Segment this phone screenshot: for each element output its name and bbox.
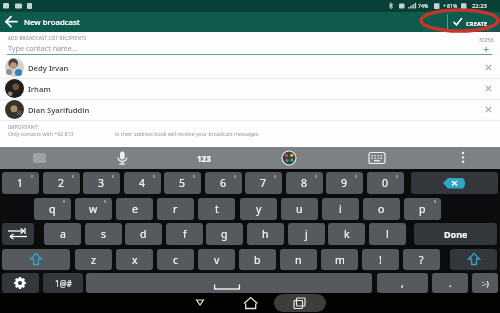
staticText: q xyxy=(49,202,56,216)
button[interactable]: 7 xyxy=(245,172,282,194)
button[interactable] xyxy=(450,249,497,270)
button[interactable] xyxy=(2,12,30,31)
button[interactable]: e xyxy=(116,198,153,220)
button[interactable]: 9 xyxy=(326,172,363,194)
staticText: 7 xyxy=(260,176,267,190)
button[interactable]: 6 xyxy=(205,172,242,194)
staticText: p xyxy=(419,202,426,216)
staticText: n xyxy=(295,253,302,267)
button[interactable]: 1 xyxy=(2,172,39,194)
button[interactable]: a xyxy=(44,223,81,245)
staticText: Dian Syarifuddin xyxy=(28,105,90,115)
button[interactable]: w xyxy=(75,198,112,220)
button[interactable]: Dian Syarifuddin xyxy=(0,99,500,120)
button[interactable]: y xyxy=(240,198,277,220)
button[interactable]: 0 xyxy=(367,172,404,194)
button[interactable]: Irham xyxy=(0,78,500,99)
button[interactable]: s xyxy=(85,223,122,245)
staticText: + xyxy=(483,41,490,56)
staticText: , xyxy=(401,276,404,290)
button[interactable]: g xyxy=(206,223,243,245)
button[interactable]: 5 xyxy=(164,172,201,194)
button[interactable]: d xyxy=(125,223,162,245)
button[interactable]: 1@# xyxy=(43,273,83,293)
button[interactable]: f xyxy=(166,223,203,245)
button[interactable]: ! xyxy=(362,249,399,270)
button[interactable]: Done xyxy=(414,223,497,245)
button[interactable]: CREATE xyxy=(449,12,500,31)
staticText: h xyxy=(262,227,269,241)
staticText: f xyxy=(183,227,187,241)
staticText: 81% xyxy=(447,2,458,9)
staticText: l xyxy=(386,227,389,241)
button[interactable]: b xyxy=(239,249,276,270)
staticText: y xyxy=(256,202,262,216)
staticText: CREATE xyxy=(466,20,488,28)
staticText: c xyxy=(173,253,179,267)
button[interactable]: c xyxy=(157,249,194,270)
staticText: 8 xyxy=(301,176,308,190)
staticText: e xyxy=(132,202,138,216)
button[interactable] xyxy=(190,295,210,311)
staticText: b xyxy=(254,253,261,267)
staticText: ADD BROADCAST LIST RECIPIENTS xyxy=(8,35,87,41)
button[interactable]: q xyxy=(34,198,71,220)
button[interactable] xyxy=(2,273,39,293)
button[interactable]: k xyxy=(328,223,365,245)
staticText: w xyxy=(89,202,98,216)
button[interactable]: l xyxy=(369,223,406,245)
staticText: Dedy Irvan xyxy=(28,63,69,73)
button[interactable]: n xyxy=(280,249,317,270)
staticText: a xyxy=(60,227,66,241)
button[interactable]: i xyxy=(322,198,359,220)
staticText: Type contact name... xyxy=(8,43,78,53)
button[interactable]: z xyxy=(75,249,112,270)
button[interactable]: . xyxy=(432,273,468,293)
button[interactable] xyxy=(86,273,372,293)
button[interactable]: p xyxy=(404,198,441,220)
staticText: 6 xyxy=(220,176,227,190)
button[interactable]: Dedy Irvan xyxy=(0,57,500,78)
staticText: 123 xyxy=(197,153,211,164)
staticText: t xyxy=(215,202,219,216)
staticText: g xyxy=(221,227,228,241)
button[interactable]: r xyxy=(157,198,194,220)
button[interactable] xyxy=(2,249,70,270)
staticText: . xyxy=(449,276,452,290)
button[interactable]: 8 xyxy=(286,172,323,194)
button[interactable]: 4 xyxy=(124,172,161,194)
staticText: 1@# xyxy=(55,278,72,289)
staticText: j xyxy=(305,227,308,241)
button[interactable]: j xyxy=(288,223,325,245)
button[interactable]: t xyxy=(198,198,235,220)
staticText: Irham xyxy=(28,84,51,94)
button[interactable] xyxy=(274,294,326,312)
button[interactable]: , xyxy=(377,273,428,293)
button[interactable]: v xyxy=(198,249,235,270)
button[interactable]: u xyxy=(281,198,318,220)
staticText: i xyxy=(339,202,342,216)
button[interactable] xyxy=(411,172,498,194)
staticText: 3 xyxy=(98,176,105,190)
button[interactable]: :-) xyxy=(472,273,498,293)
staticText: 2 xyxy=(58,176,65,190)
button[interactable]: o xyxy=(363,198,400,220)
button[interactable]: x xyxy=(116,249,153,270)
button[interactable]: h xyxy=(247,223,284,245)
button[interactable] xyxy=(241,294,261,312)
staticText: 4 xyxy=(139,176,146,190)
button[interactable]: m xyxy=(321,249,358,270)
staticText: r xyxy=(173,202,178,216)
button[interactable]: 3 xyxy=(83,172,120,194)
staticText: s xyxy=(101,227,107,241)
staticText: d xyxy=(140,227,147,241)
staticText: :-) xyxy=(482,278,489,288)
button[interactable] xyxy=(290,295,310,311)
staticText: u xyxy=(296,202,303,216)
button[interactable] xyxy=(2,223,34,245)
button[interactable]: ? xyxy=(403,249,440,270)
staticText: 5 xyxy=(179,176,186,190)
button[interactable]: 2 xyxy=(43,172,80,194)
staticText: New broadcast xyxy=(24,17,80,28)
staticText: 22:23 xyxy=(472,2,487,10)
